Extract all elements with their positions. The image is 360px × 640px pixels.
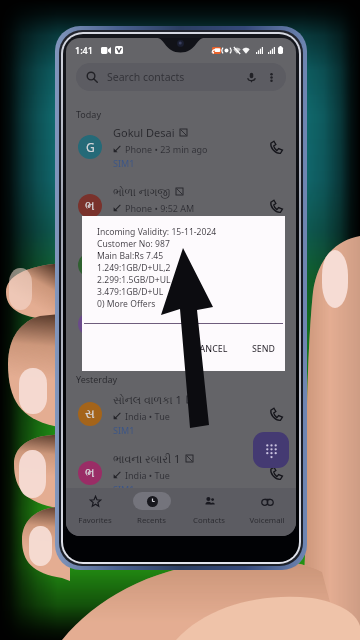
button[interactable]: Call	[258, 129, 294, 165]
button[interactable]: Favorites	[66, 488, 123, 536]
button[interactable]: G	[66, 117, 296, 176]
button[interactable]: Call	[258, 247, 294, 283]
staticText: 3.479:1GB/D+UL	[97, 286, 164, 298]
staticText: Today	[76, 108, 101, 120]
button[interactable]: Contacts	[180, 488, 238, 536]
staticText: 1:41	[75, 44, 93, 56]
staticText: Incoming Validity: 15-11-2024	[97, 226, 217, 238]
staticText: રાજુભાઈ	[113, 304, 152, 315]
staticText: Voicemail	[249, 515, 285, 526]
staticText: Gokul Desai	[113, 125, 175, 140]
button[interactable]: ભ	[66, 176, 296, 235]
button[interactable]: ભ	[66, 443, 296, 502]
staticText: ભોળા નાગજી	[113, 184, 171, 199]
staticText: India • Tue	[125, 469, 170, 481]
staticText: 1.249:1GB/D+UL,2	[97, 262, 171, 274]
staticText: 0) More Offers	[97, 298, 156, 310]
button[interactable]: સ	[66, 384, 296, 443]
staticText: Customer No: 987	[97, 238, 170, 250]
staticText: SIM1	[113, 424, 135, 436]
staticText: સોનલ વાળકા 1	[113, 392, 182, 407]
staticText: SIM1	[113, 157, 135, 169]
button[interactable]: ક	[66, 235, 296, 294]
staticText: કાનુભાઈ	[113, 245, 152, 256]
other: More options	[266, 72, 277, 83]
button[interactable]: Dial pad	[253, 432, 289, 468]
staticText: Recents	[137, 515, 166, 526]
staticText: Yesterday	[76, 373, 118, 385]
staticText: Phone • 23 min ago	[125, 143, 208, 155]
other: Voice search	[246, 72, 257, 83]
staticText: SIM1	[113, 483, 135, 495]
staticText: 2.299:1.5GB/D+UL	[97, 274, 171, 286]
staticText: Search contacts	[107, 70, 185, 84]
staticText: SEND	[252, 343, 275, 355]
staticText: Phone • 7:05 AM	[125, 318, 195, 330]
button[interactable]: Recents	[123, 488, 180, 536]
staticText: સ	[85, 408, 95, 420]
staticText: India • Tue	[125, 410, 170, 422]
staticText: Contacts	[193, 515, 225, 526]
button[interactable]: SEND	[245, 337, 282, 361]
staticText: ર	[87, 318, 94, 330]
staticText: Main Bal:Rs 7.45	[97, 250, 164, 262]
button[interactable]: Search contacts	[76, 63, 286, 91]
staticText: ભ	[85, 200, 95, 212]
staticText: ભાવના રબારી 1	[113, 451, 181, 466]
staticText: Phone • 9:52 AM	[125, 202, 195, 214]
staticText: ભ	[85, 467, 95, 479]
staticText: G	[86, 139, 95, 155]
button[interactable]: ર	[66, 294, 296, 353]
button[interactable]: Call	[258, 396, 294, 432]
staticText: SIM1	[113, 273, 135, 285]
staticText: Favorites	[78, 515, 112, 526]
button[interactable]: Call	[258, 455, 294, 491]
button[interactable]: Call	[258, 306, 294, 342]
button[interactable]: CANCEL	[187, 337, 235, 361]
button[interactable]: Call	[258, 188, 294, 224]
staticText: CANCEL	[194, 343, 228, 355]
button[interactable]: Voicemail	[238, 488, 296, 536]
staticText: Phone • 8:20 AM	[125, 259, 195, 271]
